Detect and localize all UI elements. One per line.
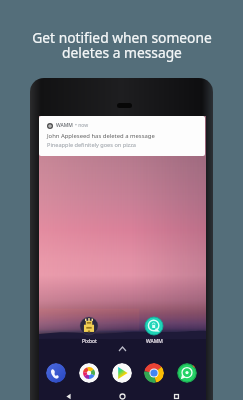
button[interactable]: Back [65, 393, 72, 400]
staticText: Pineapple definitely goes on pizza [47, 141, 136, 149]
staticText: WAMM [56, 122, 73, 129]
button[interactable]: All apps [119, 347, 126, 351]
button[interactable]: WhatsApp [177, 363, 197, 383]
button[interactable]: Play Store [112, 363, 132, 383]
button[interactable]: Recents [173, 393, 180, 400]
button[interactable]: Pixbot [71, 317, 107, 345]
staticText: WAMM [146, 338, 163, 345]
staticText: • now [75, 122, 89, 129]
button[interactable]: Phone [46, 363, 66, 383]
staticText: Get notified when someone deletes a mess… [32, 28, 212, 62]
button[interactable]: Camera [79, 363, 99, 383]
button[interactable]: Home [119, 393, 126, 400]
button[interactable]: WAMM [39, 116, 205, 156]
staticText: John Appleseed has deleted a message [47, 132, 155, 140]
button[interactable]: WAMM [136, 317, 172, 345]
staticText: Pixbot [82, 338, 97, 345]
button[interactable]: Chrome [144, 363, 164, 383]
